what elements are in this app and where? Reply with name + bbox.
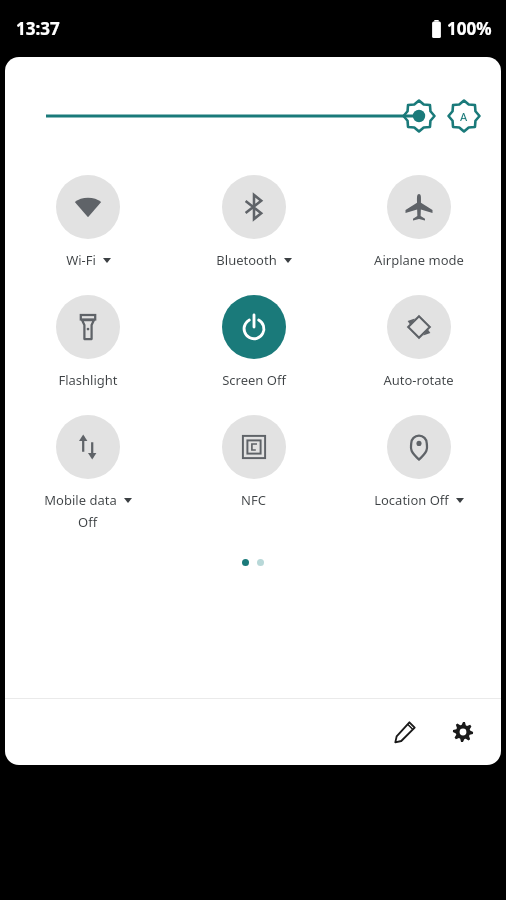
button[interactable]: Location Off — [336, 415, 501, 509]
staticText: Screen Off — [222, 371, 286, 389]
staticText: Mobile data — [44, 491, 117, 509]
button[interactable]: Edit — [383, 710, 427, 754]
staticText: Flashlight — [58, 371, 118, 389]
button[interactable]: Wi-Fi — [5, 175, 171, 269]
button[interactable]: Mobile data — [5, 415, 171, 531]
button[interactable]: Auto-rotate — [336, 295, 501, 389]
button[interactable]: Flashlight — [5, 295, 171, 389]
button[interactable]: Settings — [441, 710, 485, 754]
staticText: Wi-Fi — [66, 251, 96, 269]
staticText: Auto-rotate — [383, 371, 454, 389]
staticText: NFC — [241, 491, 266, 509]
button[interactable] — [46, 99, 435, 133]
staticText: Off — [78, 513, 98, 531]
staticText: 13:37 — [16, 17, 60, 40]
staticText: 100% — [447, 17, 492, 40]
button[interactable]: Auto brightness — [447, 99, 481, 133]
staticText: Bluetooth — [216, 251, 277, 269]
button[interactable]: Screen Off — [171, 295, 336, 389]
button[interactable]: NFC — [171, 415, 336, 509]
staticText: Airplane mode — [374, 251, 464, 269]
staticText: A — [460, 109, 468, 124]
button[interactable]: Airplane mode — [336, 175, 501, 269]
button[interactable]: Bluetooth — [171, 175, 336, 269]
staticText: Location Off — [374, 491, 449, 509]
